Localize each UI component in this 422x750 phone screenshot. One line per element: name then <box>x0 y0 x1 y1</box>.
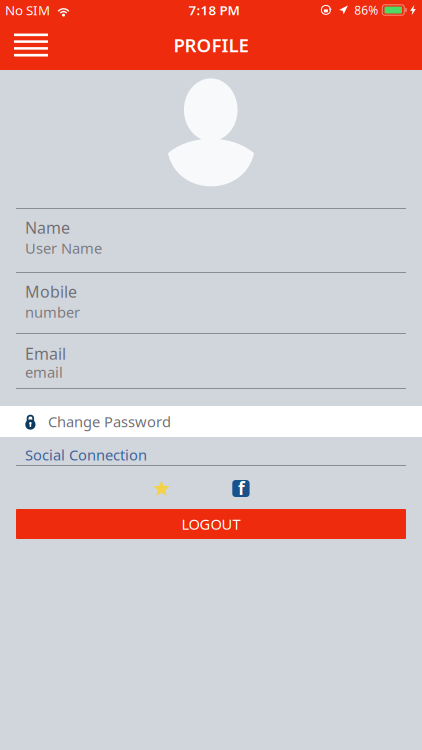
staticText: number <box>25 302 80 322</box>
staticText: Mobile <box>25 281 77 302</box>
staticText: email <box>25 362 63 382</box>
staticText: 86% <box>354 2 378 18</box>
button[interactable]: LOGOUT <box>0 509 422 539</box>
staticText: Name <box>25 217 70 238</box>
staticText: 7:18 PM <box>188 1 239 19</box>
button[interactable]: Rate this app <box>153 480 170 497</box>
button[interactable]: Facebook <box>232 480 250 497</box>
staticText: Email <box>25 343 66 364</box>
staticText: No SIM <box>5 1 50 19</box>
staticText: f <box>238 477 245 500</box>
button[interactable]: Change Password <box>0 406 422 437</box>
staticText: LOGOUT <box>181 514 240 534</box>
staticText: User Name <box>25 238 102 258</box>
staticText: PROFILE <box>173 33 248 57</box>
button[interactable]: Menu <box>0 20 60 69</box>
staticText: Change Password <box>48 412 171 431</box>
staticText: Social Connection <box>25 445 147 464</box>
